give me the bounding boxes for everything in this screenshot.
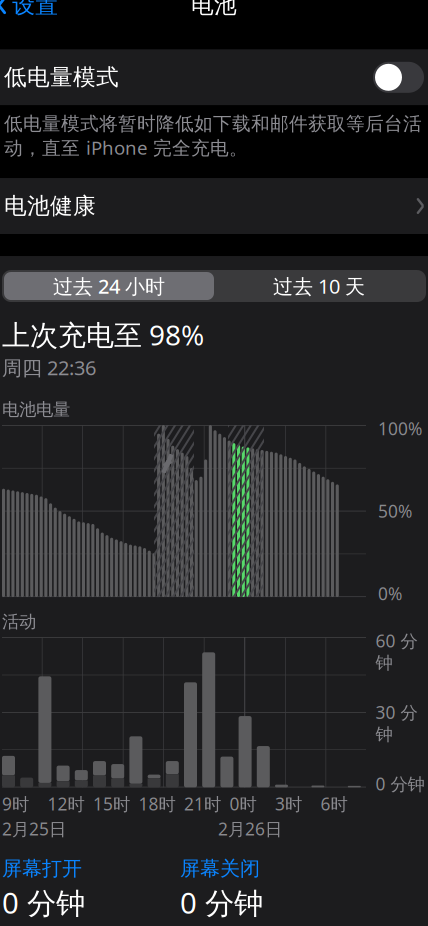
staticText: 6时 (320, 792, 347, 815)
staticText: 0 分钟 (375, 772, 424, 795)
staticText: 12时 (47, 792, 84, 815)
staticText: 0 分钟 (180, 883, 263, 922)
staticText: 21时 (184, 792, 221, 815)
staticText: 电池 (191, 0, 237, 19)
staticText: 周四 22:36 (2, 354, 96, 381)
staticText: 15时 (93, 792, 130, 815)
staticText: 过去 24 小时 (53, 273, 165, 299)
staticText: 过去 10 天 (273, 273, 365, 299)
staticText: 低电量模式将暂时降低如下载和邮件获取等后台活动，直至 iPhone 完全充电。 (4, 112, 422, 160)
button[interactable]: 低电量模式 (0, 49, 428, 105)
button[interactable]: 设置 (0, 0, 66, 27)
staticText: 2月26日 (218, 817, 282, 840)
staticText: 屏幕关闭 (180, 856, 260, 881)
staticText: 活动 (2, 611, 36, 632)
button[interactable]: 电池健康 (0, 178, 428, 234)
button[interactable]: 过去 10 天 (214, 272, 424, 300)
staticText: 低电量模式 (4, 63, 119, 91)
staticText: 电池电量 (2, 399, 70, 420)
staticText: 上次充电至 98% (2, 316, 204, 353)
staticText: 9时 (2, 792, 29, 815)
staticText: 100% (378, 417, 422, 440)
staticText: 屏幕打开 (2, 856, 82, 881)
staticText: 2月25日 (2, 817, 66, 840)
staticText: 60 分钟 (375, 629, 417, 674)
staticText: 电池健康 (4, 192, 96, 220)
staticText: 18时 (138, 792, 175, 815)
staticText: 设置 (12, 0, 58, 19)
staticText: 50% (378, 499, 412, 522)
staticText: 0时 (229, 792, 256, 815)
staticText: 30 分钟 (375, 701, 417, 745)
button[interactable]: 过去 24 小时 (4, 272, 214, 300)
staticText: 3时 (275, 792, 302, 815)
staticText: 0% (378, 582, 402, 605)
staticText: 0 分钟 (2, 883, 85, 922)
